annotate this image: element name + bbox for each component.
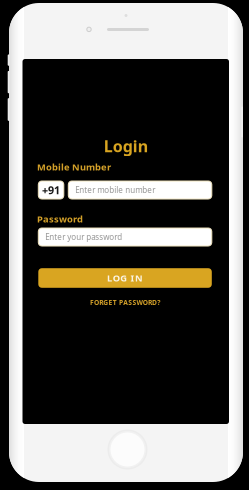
staticText: +91 <box>42 183 60 197</box>
staticText: Enter your password <box>45 232 122 242</box>
staticText: LOG IN <box>107 272 143 284</box>
button[interactable]: FORGET PASSWORD? <box>38 298 212 307</box>
staticText: Mobile Number <box>37 161 111 173</box>
button[interactable]: LOG IN <box>38 268 212 288</box>
staticText: Login <box>104 135 148 157</box>
staticText: Password <box>37 213 83 225</box>
staticText: FORGET PASSWORD? <box>90 298 160 307</box>
staticText: Enter mobile number <box>75 185 155 195</box>
